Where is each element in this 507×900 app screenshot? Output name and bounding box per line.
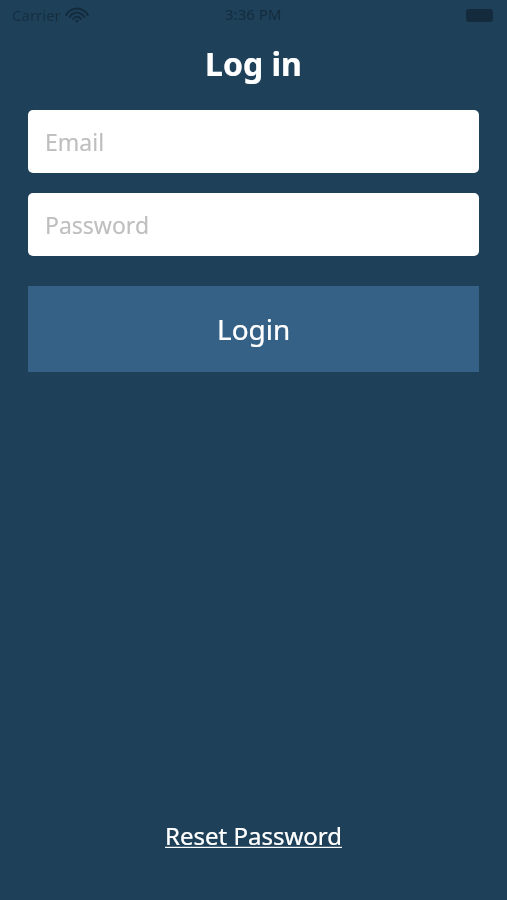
staticText: Email <box>45 126 105 157</box>
staticText: Carrier <box>12 5 61 25</box>
staticText: Reset Password <box>165 819 342 852</box>
staticText: Password <box>45 209 150 240</box>
button[interactable]: Email <box>28 110 479 173</box>
button[interactable]: Password <box>28 193 479 256</box>
staticText: Login <box>217 310 291 348</box>
staticText: Log in <box>0 42 507 86</box>
button[interactable]: Login <box>28 286 479 372</box>
staticText: 3:36 PM <box>225 4 282 24</box>
button[interactable]: Reset Password <box>157 815 350 856</box>
